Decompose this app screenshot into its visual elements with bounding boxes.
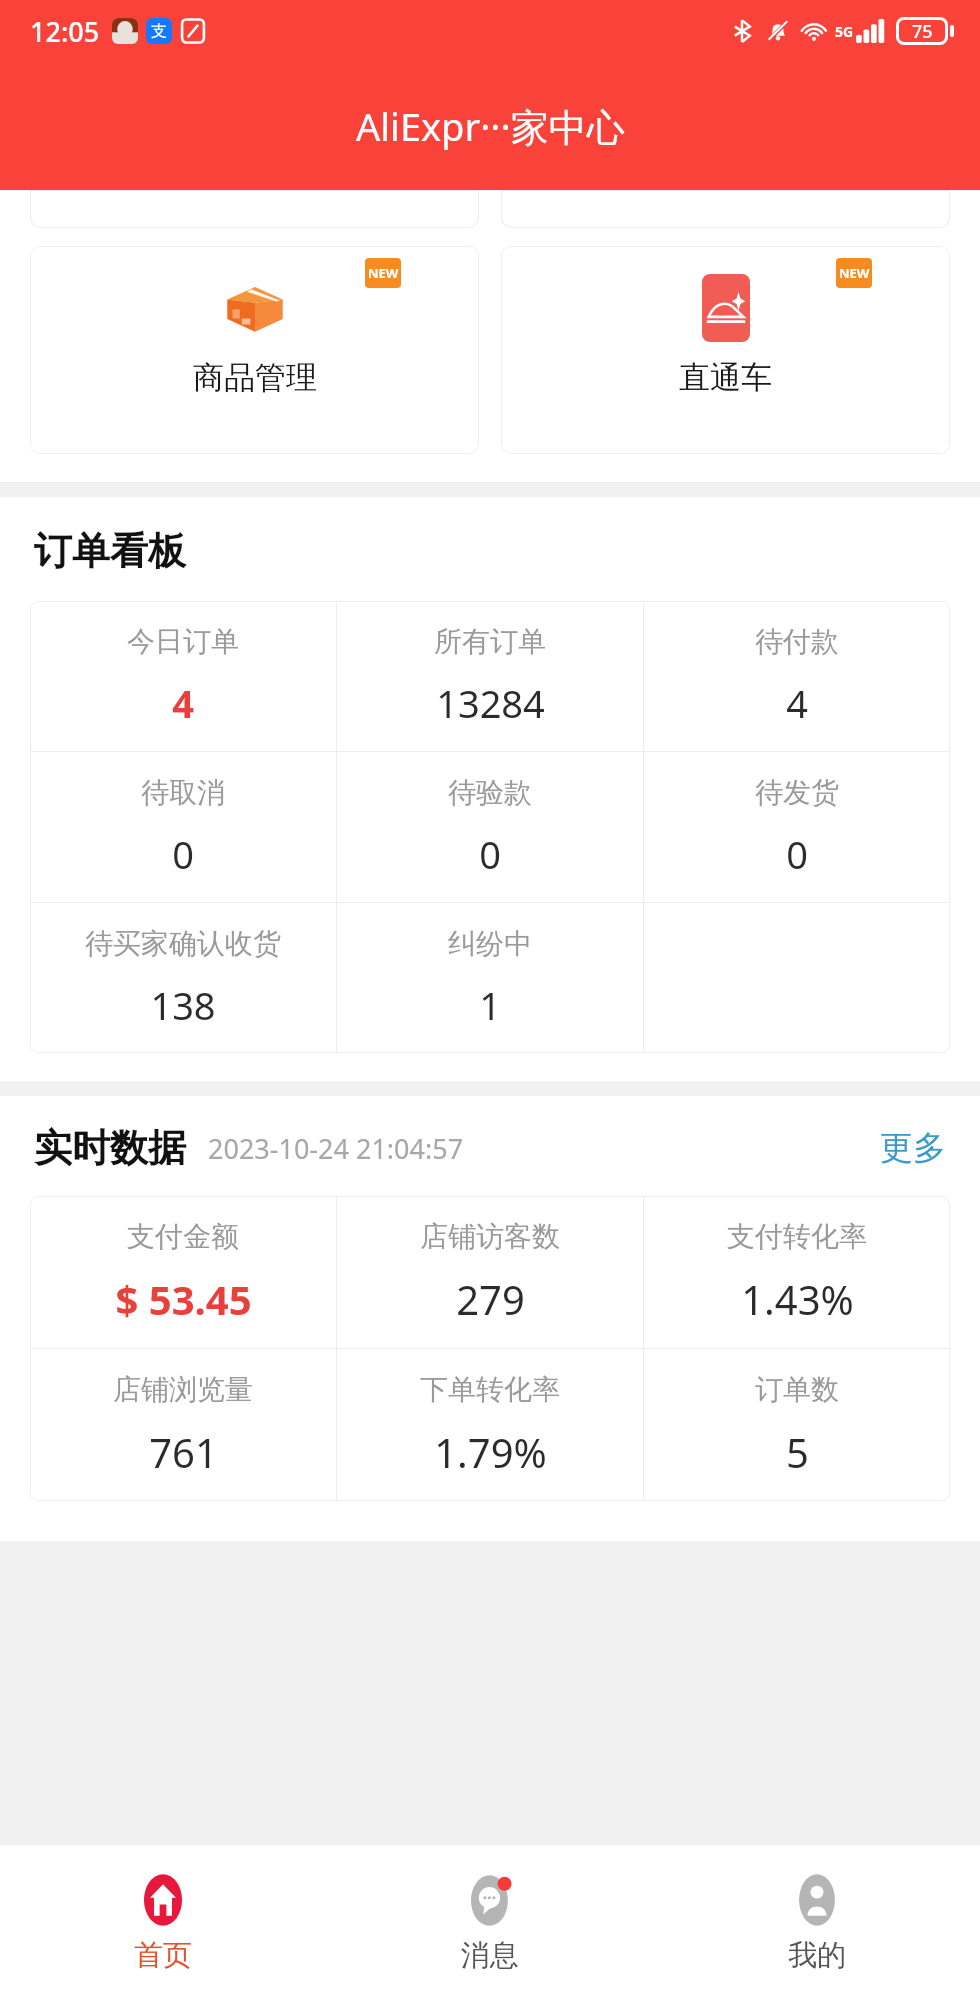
staticText: 1.79% bbox=[434, 1425, 547, 1479]
staticText: 5G bbox=[835, 22, 854, 41]
button[interactable]: 首页 bbox=[0, 1845, 326, 2000]
staticText: 店铺浏览量 bbox=[113, 1372, 253, 1407]
other: 首页 bbox=[135, 1872, 191, 1928]
button[interactable]: 直通车 bbox=[501, 246, 950, 454]
staticText: 支付转化率 bbox=[727, 1219, 867, 1254]
button[interactable]: 支付转化率 bbox=[644, 1196, 950, 1348]
button[interactable]: 所有订单 bbox=[337, 601, 643, 751]
staticText: 4 bbox=[172, 677, 194, 729]
staticText: 0 bbox=[786, 828, 808, 880]
staticText: 直通车 bbox=[679, 358, 772, 397]
staticText: AliExpr···家中心 bbox=[356, 100, 625, 152]
staticText: 订单数 bbox=[755, 1372, 839, 1407]
staticText: 支付金额 bbox=[127, 1219, 239, 1254]
staticText: 下单转化率 bbox=[420, 1372, 560, 1407]
staticText: 店铺访客数 bbox=[420, 1219, 560, 1254]
staticText: 待发货 bbox=[755, 775, 839, 810]
staticText: 更多 bbox=[880, 1127, 946, 1169]
staticText: 我的 bbox=[788, 1937, 846, 1974]
staticText: 实时数据 bbox=[34, 1124, 186, 1172]
staticText: 12:05 bbox=[30, 13, 100, 50]
button[interactable]: 支付金额 bbox=[30, 1196, 336, 1348]
button[interactable]: 下单转化率 bbox=[337, 1349, 643, 1501]
staticText: 订单看板 bbox=[34, 527, 186, 575]
staticText: 138 bbox=[150, 979, 216, 1031]
staticText: 首页 bbox=[134, 1937, 192, 1974]
staticText: 1 bbox=[479, 979, 501, 1031]
button[interactable]: 我的 bbox=[653, 1845, 980, 2000]
button[interactable] bbox=[501, 190, 950, 228]
button[interactable]: 待付款 bbox=[644, 601, 950, 751]
button[interactable]: 待发货 bbox=[644, 752, 950, 902]
staticText: 今日订单 bbox=[127, 624, 239, 659]
staticText: NEW bbox=[839, 264, 870, 282]
staticText: 纠纷中 bbox=[448, 926, 532, 961]
button[interactable]: 今日订单 bbox=[30, 601, 336, 751]
button[interactable]: 商品管理 bbox=[30, 246, 479, 454]
button[interactable]: 纠纷中 bbox=[337, 903, 643, 1053]
staticText: 75 bbox=[912, 19, 933, 44]
button[interactable]: 店铺访客数 bbox=[337, 1196, 643, 1348]
staticText: NEW bbox=[368, 264, 399, 282]
staticText: 279 bbox=[456, 1272, 525, 1326]
staticText: 待付款 bbox=[755, 624, 839, 659]
staticText: 13284 bbox=[436, 677, 545, 729]
button[interactable]: 待验款 bbox=[337, 752, 643, 902]
staticText: 所有订单 bbox=[434, 624, 546, 659]
button[interactable]: 消息 bbox=[326, 1845, 653, 2000]
button[interactable] bbox=[30, 190, 479, 228]
other: 消息 bbox=[462, 1872, 518, 1928]
staticText: 1.43% bbox=[741, 1272, 854, 1326]
button[interactable]: 店铺浏览量 bbox=[30, 1349, 336, 1501]
staticText: 0 bbox=[479, 828, 501, 880]
staticText: 消息 bbox=[461, 1937, 519, 1974]
button[interactable]: 待取消 bbox=[30, 752, 336, 902]
staticText: 0 bbox=[172, 828, 194, 880]
staticText: 2023-10-24 21:04:57 bbox=[208, 1130, 464, 1167]
button[interactable]: 更多 bbox=[880, 1127, 946, 1169]
other: 我的 bbox=[789, 1872, 845, 1928]
staticText: 商品管理 bbox=[193, 358, 317, 397]
staticText: $ 53.45 bbox=[115, 1272, 252, 1326]
staticText: 支 bbox=[151, 21, 167, 41]
staticText: 待买家确认收货 bbox=[85, 926, 281, 961]
button[interactable]: 订单数 bbox=[644, 1349, 950, 1501]
staticText: 待取消 bbox=[141, 775, 225, 810]
staticText: 5 bbox=[786, 1425, 809, 1479]
staticText: 4 bbox=[786, 677, 808, 729]
button[interactable]: 待买家确认收货 bbox=[30, 903, 336, 1053]
staticText: 待验款 bbox=[448, 775, 532, 810]
staticText: 761 bbox=[149, 1425, 218, 1479]
